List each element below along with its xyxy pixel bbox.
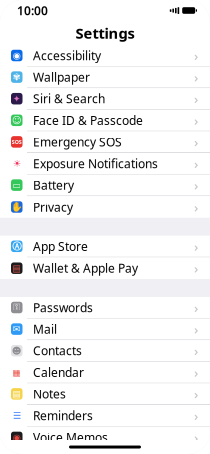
staticText: Passwords <box>33 299 93 315</box>
button[interactable]: ☺ <box>0 110 210 131</box>
staticText: ☻ <box>12 345 22 356</box>
staticText: Emergency SOS <box>33 134 122 150</box>
staticText: Ⓐ <box>12 241 21 252</box>
staticText: › <box>194 385 198 403</box>
button[interactable]: ☻ <box>0 340 210 362</box>
staticText: › <box>194 111 198 129</box>
staticText: › <box>194 68 198 86</box>
staticText: ▭ <box>12 180 21 190</box>
staticText: › <box>194 363 198 381</box>
staticText: ✾ <box>13 72 21 82</box>
staticText: ◉ <box>13 432 21 443</box>
staticText: Settings <box>75 23 134 43</box>
staticText: Reminders <box>33 407 93 423</box>
button[interactable]: ✋ <box>0 196 210 218</box>
staticText: Wallpaper <box>33 69 90 85</box>
staticText: ▦ <box>12 367 21 378</box>
staticText: › <box>194 299 198 316</box>
staticText: › <box>194 155 198 172</box>
staticText: Wallet & Apple Pay <box>33 260 138 276</box>
staticText: › <box>194 198 198 216</box>
button[interactable]: SOS <box>0 131 210 153</box>
button[interactable]: ▦ <box>0 362 210 383</box>
button[interactable]: ◉ <box>0 427 210 448</box>
staticText: 10:00 <box>17 2 48 18</box>
button[interactable]: ▤ <box>0 383 210 405</box>
staticText: Notes <box>33 386 66 402</box>
button[interactable]: ☀ <box>0 153 210 175</box>
staticText: App Store <box>33 238 88 254</box>
staticText: › <box>194 342 198 359</box>
staticText: ☀ <box>13 158 21 169</box>
staticText: › <box>194 176 198 194</box>
staticText: › <box>194 320 198 338</box>
staticText: ☺ <box>12 115 22 126</box>
button[interactable]: ☰ <box>0 405 210 427</box>
staticText: Battery <box>33 177 74 193</box>
button[interactable]: ✉ <box>0 319 210 340</box>
button[interactable]: ◉ <box>0 45 210 67</box>
staticText: Calendar <box>33 364 84 380</box>
staticText: ▤ <box>12 389 21 399</box>
staticText: › <box>194 428 198 446</box>
staticText: Mail <box>33 321 57 337</box>
staticText: Siri & Search <box>33 91 105 107</box>
staticText: ✉ <box>13 324 21 334</box>
staticText: ☰ <box>13 410 21 421</box>
staticText: Face ID & Passcode <box>33 112 143 128</box>
staticText: ▤ <box>12 263 21 273</box>
staticText: › <box>194 407 198 424</box>
staticText: SOS <box>12 138 22 145</box>
button[interactable]: ▤ <box>0 257 210 279</box>
staticText: ◉ <box>13 50 21 61</box>
button[interactable]: ▭ <box>0 175 210 196</box>
staticText: Voice Memos <box>33 429 108 445</box>
staticText: ✋ <box>11 202 23 212</box>
staticText: › <box>194 259 198 277</box>
button[interactable]: ⚿ <box>0 297 210 319</box>
staticText: Contacts <box>33 343 82 359</box>
staticText: Exposure Notifications <box>33 155 158 171</box>
staticText: ✦ <box>13 93 21 104</box>
staticText: › <box>194 90 198 107</box>
staticText: ⚿ <box>13 303 20 312</box>
button[interactable]: ✦ <box>0 88 210 110</box>
button[interactable]: ✾ <box>0 67 210 88</box>
button[interactable]: Ⓐ <box>0 236 210 257</box>
staticText: Privacy <box>33 199 73 215</box>
staticText: Accessibility <box>33 47 101 63</box>
staticText: › <box>194 237 198 255</box>
staticText: › <box>194 133 198 151</box>
staticText: › <box>194 47 198 64</box>
